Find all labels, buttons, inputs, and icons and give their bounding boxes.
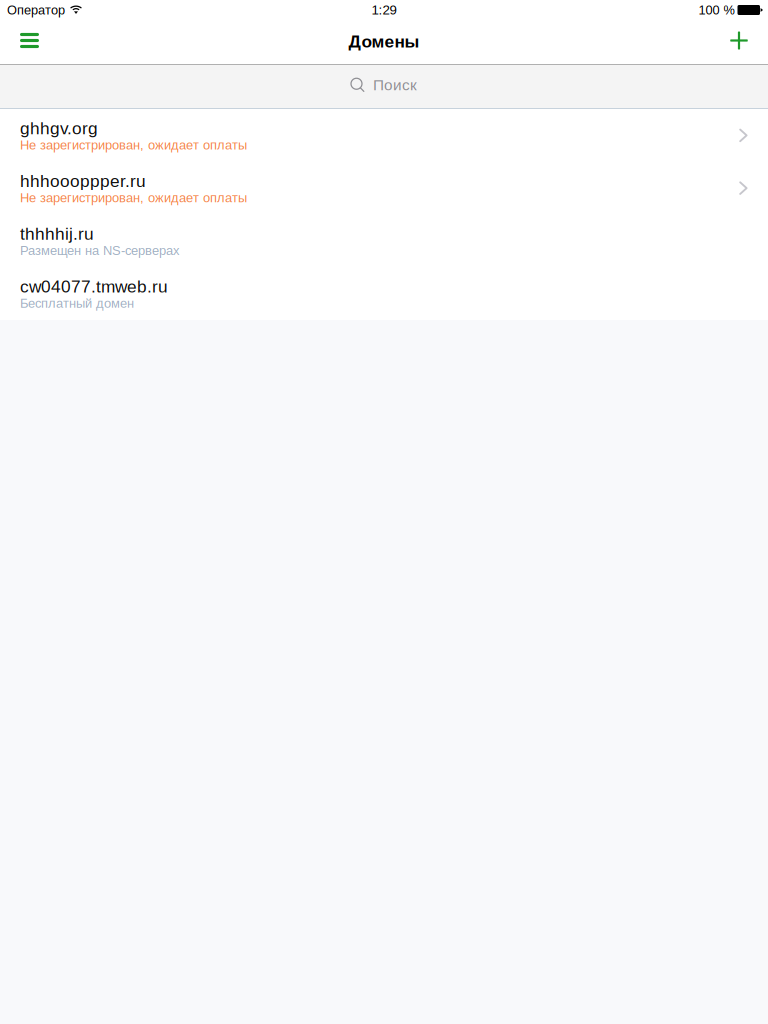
staticText: Оператор bbox=[7, 3, 65, 17]
button[interactable]: cw04077.tmweb.ru bbox=[0, 267, 768, 320]
button[interactable]: Поиск bbox=[0, 65, 768, 109]
staticText: hhhoooppper.ru bbox=[20, 171, 146, 191]
staticText: thhhhij.ru bbox=[20, 224, 94, 243]
button[interactable]: Добавить домен bbox=[716, 20, 768, 61]
staticText: Домены bbox=[348, 32, 419, 51]
button[interactable]: hhhoooppper.ru bbox=[0, 162, 768, 215]
staticText: Не зарегистрирован, ожидает оплаты bbox=[20, 191, 247, 205]
button[interactable]: ghhgv.org bbox=[0, 109, 768, 162]
staticText: 100 % bbox=[698, 3, 734, 17]
staticText: 1:29 bbox=[371, 3, 396, 17]
staticText: Поиск bbox=[373, 76, 417, 93]
staticText: Не зарегистрирован, ожидает оплаты bbox=[20, 138, 247, 152]
staticText: Бесплатный домен bbox=[20, 296, 134, 310]
staticText: cw04077.tmweb.ru bbox=[20, 277, 168, 296]
button[interactable]: thhhhij.ru bbox=[0, 214, 768, 267]
button[interactable]: Меню bbox=[0, 20, 53, 61]
staticText: Размещен на NS-серверах bbox=[20, 243, 179, 258]
staticText: ghhgv.org bbox=[20, 119, 98, 138]
